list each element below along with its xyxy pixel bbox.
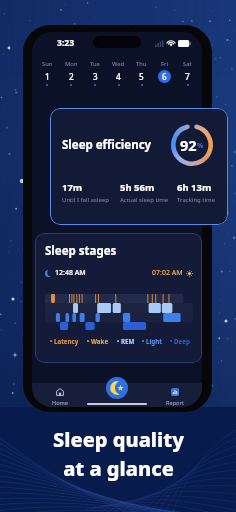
button[interactable]: Thu <box>130 60 153 86</box>
staticText: 2 <box>69 71 74 82</box>
staticText: Thu <box>136 60 147 68</box>
staticText: % <box>197 141 204 151</box>
staticText: 07:02 AM <box>152 268 183 278</box>
staticText: Tue <box>90 60 100 68</box>
staticText: Home <box>52 399 68 407</box>
staticText: 17m <box>62 181 83 194</box>
staticText: Sun <box>42 60 53 68</box>
staticText: 5 <box>139 71 144 82</box>
staticText: Sleep stages <box>45 243 117 259</box>
staticText: Tracking time <box>177 196 216 204</box>
staticText: 7 <box>185 71 190 82</box>
staticText: Deep <box>174 337 190 345</box>
button[interactable]: Report <box>147 383 202 407</box>
staticText: 1 <box>45 71 50 82</box>
staticText: Wed <box>112 60 125 68</box>
button[interactable]: Start sleep tracking <box>106 377 128 399</box>
button[interactable]: Mon <box>59 60 83 86</box>
button[interactable]: Tue <box>83 60 107 86</box>
staticText: Until I fall asleep <box>62 196 109 204</box>
staticText: Fri <box>161 60 168 68</box>
staticText: Light <box>146 337 162 345</box>
button[interactable]: Sleep efficiency <box>50 108 228 225</box>
staticText: Latency <box>54 337 79 345</box>
button[interactable]: Fri <box>153 60 176 83</box>
staticText: Sleep quality <box>53 426 184 453</box>
staticText: 5h 56m <box>120 181 155 194</box>
staticText: 3:23 <box>57 37 75 49</box>
staticText: 6h 13m <box>177 181 212 194</box>
staticText: Sat <box>183 60 192 68</box>
staticText: 92 <box>180 135 197 155</box>
staticText: 6 <box>162 71 167 82</box>
staticText: Wake <box>91 337 109 345</box>
button[interactable]: Wed <box>107 60 130 86</box>
button[interactable]: Home <box>32 383 87 407</box>
button[interactable]: Sun <box>35 60 59 86</box>
staticText: 4 <box>116 71 121 82</box>
staticText: Sleep efficiency <box>62 137 152 153</box>
button[interactable]: Sleep stages <box>35 233 202 363</box>
staticText: REM <box>121 337 135 345</box>
button[interactable]: Sat <box>176 60 199 86</box>
staticText: Mon <box>65 60 78 68</box>
staticText: Report <box>166 399 184 407</box>
staticText: Actual sleep time <box>120 196 169 204</box>
staticText: at a glance <box>63 455 174 482</box>
staticText: 12:48 AM <box>55 268 86 278</box>
staticText: 3 <box>93 71 98 82</box>
